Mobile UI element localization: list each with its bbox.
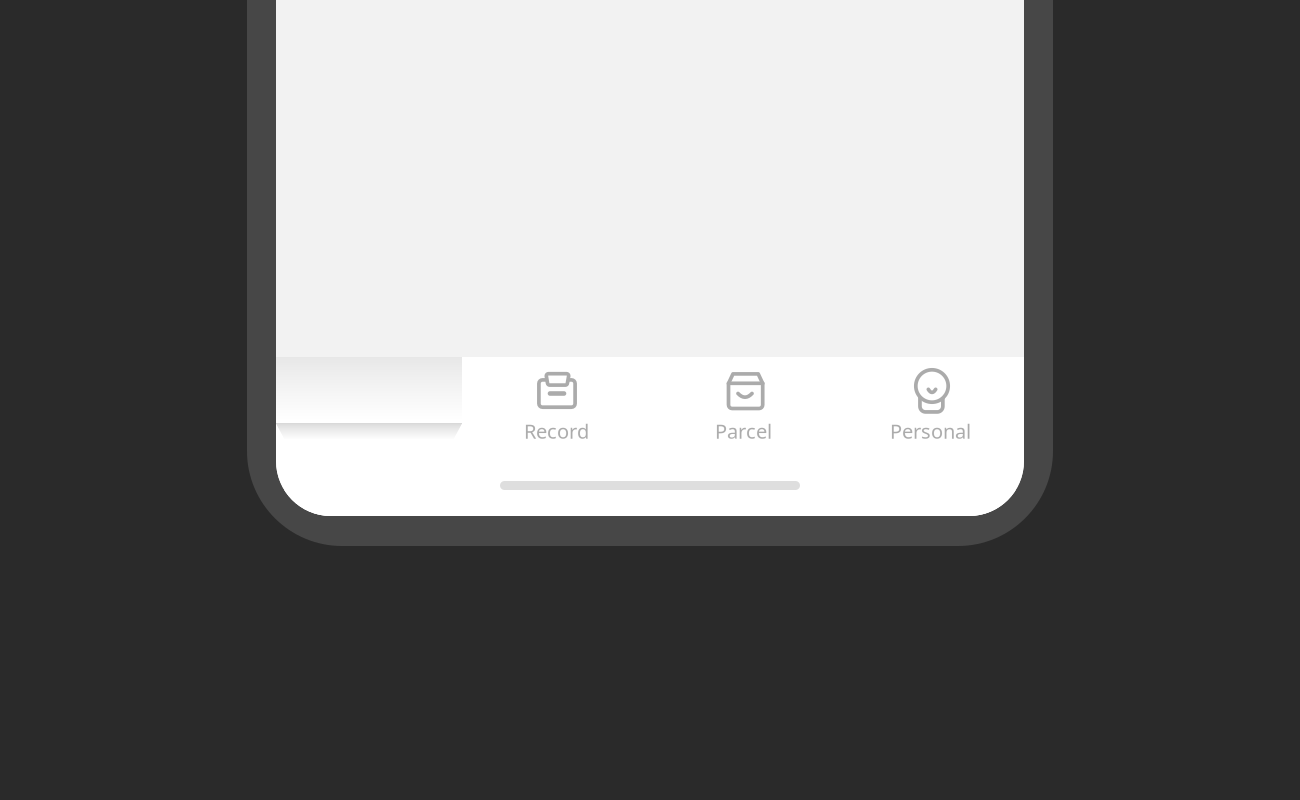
button[interactable]: Record: [463, 357, 650, 450]
staticText: Home: [341, 418, 398, 444]
staticText: Parcel: [715, 418, 772, 444]
staticText: Record: [524, 418, 589, 444]
button[interactable]: Home: [276, 357, 463, 450]
button[interactable]: Personal: [837, 357, 1024, 450]
staticText: Personal: [890, 418, 971, 444]
button[interactable]: Parcel: [650, 357, 837, 450]
